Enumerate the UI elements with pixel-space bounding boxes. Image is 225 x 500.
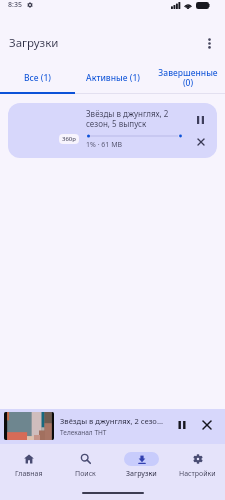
button[interactable]: Главная xyxy=(0,444,57,486)
button[interactable]: Настройки xyxy=(169,444,225,486)
button[interactable]: Все (1) xyxy=(0,62,75,94)
button[interactable]: Pause xyxy=(169,412,194,437)
staticText: Поиск xyxy=(75,469,96,479)
staticText: 8:35 xyxy=(8,0,22,10)
staticText: Активные (1) xyxy=(86,72,140,84)
staticText: Телеканал ТНТ xyxy=(60,428,107,437)
staticText: Загрузки xyxy=(9,35,59,51)
staticText: Звёзды в джунглях, 2 сезон, 5 выпуск xyxy=(86,108,186,130)
staticText: Все (1) xyxy=(24,72,51,84)
staticText: Главная xyxy=(15,469,43,479)
staticText: Завершенные (0) xyxy=(158,67,218,89)
button[interactable]: Cancel download xyxy=(191,132,211,152)
button[interactable]: Загрузки xyxy=(113,444,169,486)
button[interactable]: Close player xyxy=(194,412,219,437)
staticText: Загрузки xyxy=(126,469,157,479)
staticText: 360p xyxy=(62,135,77,143)
staticText: Настройки xyxy=(179,469,216,479)
button[interactable]: Звёзды в джунглях, 2 сезо... xyxy=(0,409,225,444)
button[interactable]: 360p xyxy=(8,103,217,158)
staticText: 1% · 61 MB xyxy=(86,140,123,150)
button[interactable]: More options xyxy=(196,30,222,56)
button[interactable]: Поиск xyxy=(57,444,113,486)
button[interactable]: Активные (1) xyxy=(75,62,150,94)
button[interactable]: Pause download xyxy=(191,110,211,130)
button[interactable]: Завершенные (0) xyxy=(150,62,225,94)
staticText: Звёзды в джунглях, 2 сезо... xyxy=(60,416,163,426)
